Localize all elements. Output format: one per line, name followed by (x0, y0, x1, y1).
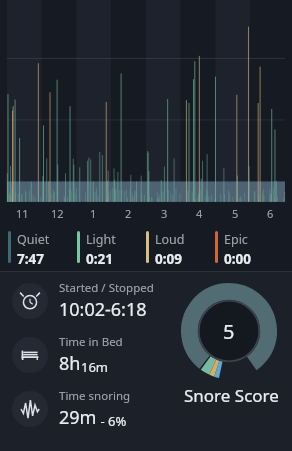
staticText: 6 (267, 206, 274, 221)
staticText: 29m (59, 405, 97, 430)
button[interactable]: Epic (215, 231, 284, 268)
button[interactable]: Snore Score (176, 384, 286, 407)
button[interactable]: Time in bed (12, 334, 292, 376)
staticText: 5 (223, 318, 235, 345)
staticText: Snore Score (184, 384, 279, 407)
staticText: 16m (81, 358, 109, 376)
staticText: - 6% (97, 412, 127, 430)
button[interactable]: Light (77, 231, 146, 268)
staticText: 3 (161, 206, 168, 221)
staticText: Loud (155, 231, 185, 248)
staticText: 1 (90, 206, 97, 221)
other: Time in bed (20, 345, 40, 365)
staticText: Quiet (17, 231, 50, 248)
staticText: 11 (16, 206, 29, 221)
staticText: 4 (196, 206, 203, 221)
staticText: Epic (224, 231, 248, 248)
staticText: 8h (59, 351, 81, 376)
staticText: 10:02-6:18 (59, 297, 147, 322)
staticText: 2 (125, 206, 132, 221)
button[interactable]: Snore score 5 (181, 283, 277, 379)
staticText: 7:47 (17, 250, 44, 268)
button[interactable]: Loud (146, 231, 215, 268)
staticText: 0:21 (86, 250, 113, 268)
staticText: Started / Stopped (59, 280, 154, 296)
staticText: 0:00 (224, 250, 251, 268)
staticText: 0:09 (155, 250, 182, 268)
staticText: 12 (51, 206, 64, 221)
staticText: Light (86, 231, 116, 248)
other: Alarm (20, 291, 40, 311)
button[interactable]: Quiet (8, 231, 77, 268)
other: Snoring (20, 399, 40, 419)
staticText: Time in Bed (59, 334, 123, 350)
button[interactable]: Snoring (12, 388, 292, 430)
staticText: Time snoring (59, 388, 131, 404)
button[interactable]: Alarm (12, 280, 292, 322)
staticText: 5 (232, 206, 239, 221)
